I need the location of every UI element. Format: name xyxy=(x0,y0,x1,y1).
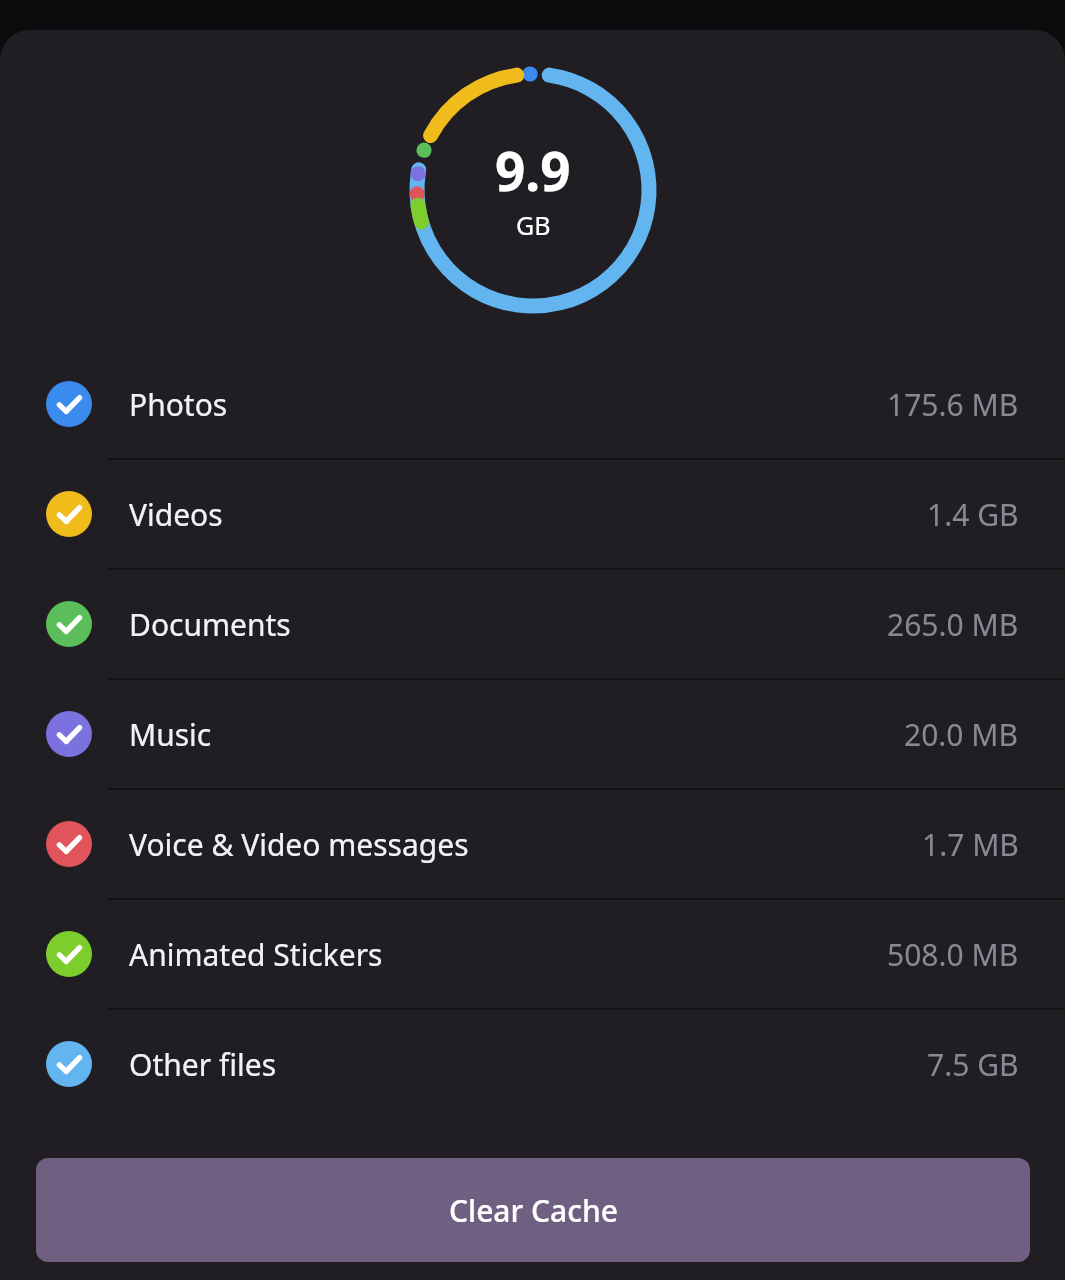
other: Selected xyxy=(46,821,92,867)
other: Selected xyxy=(46,1041,92,1087)
staticText: 20.0 MB xyxy=(904,714,1019,755)
button[interactable]: Selected xyxy=(0,1010,1065,1118)
other: Selected xyxy=(46,491,92,537)
staticText: Voice & Video messages xyxy=(129,824,922,865)
staticText: 7.5 GB xyxy=(927,1044,1019,1085)
other: Selected xyxy=(46,601,92,647)
staticText: 1.7 MB xyxy=(922,824,1019,865)
other: Selected xyxy=(46,381,92,427)
staticText: 265.0 MB xyxy=(887,604,1019,645)
button[interactable]: Selected xyxy=(0,570,1065,678)
other: Selected xyxy=(46,931,92,977)
staticText: 9.9 xyxy=(495,134,571,206)
staticText: 508.0 MB xyxy=(887,934,1019,975)
button[interactable]: Selected xyxy=(0,680,1065,788)
staticText: Animated Stickers xyxy=(129,934,887,975)
staticText: Music xyxy=(129,714,904,755)
staticText: 175.6 MB xyxy=(887,384,1019,425)
staticText: GB xyxy=(516,208,551,242)
other: Selected xyxy=(46,711,92,757)
staticText: Videos xyxy=(129,494,927,535)
staticText: Other files xyxy=(129,1044,927,1085)
button[interactable]: Selected xyxy=(0,350,1065,458)
staticText: Photos xyxy=(129,384,887,425)
button[interactable]: Selected xyxy=(0,790,1065,898)
button[interactable]: Selected xyxy=(0,460,1065,568)
staticText: Clear Cache xyxy=(449,1190,618,1231)
staticText: Documents xyxy=(129,604,887,645)
staticText: 1.4 GB xyxy=(927,494,1019,535)
button[interactable]: Selected xyxy=(0,900,1065,1008)
button[interactable]: Clear Cache xyxy=(36,1158,1030,1262)
